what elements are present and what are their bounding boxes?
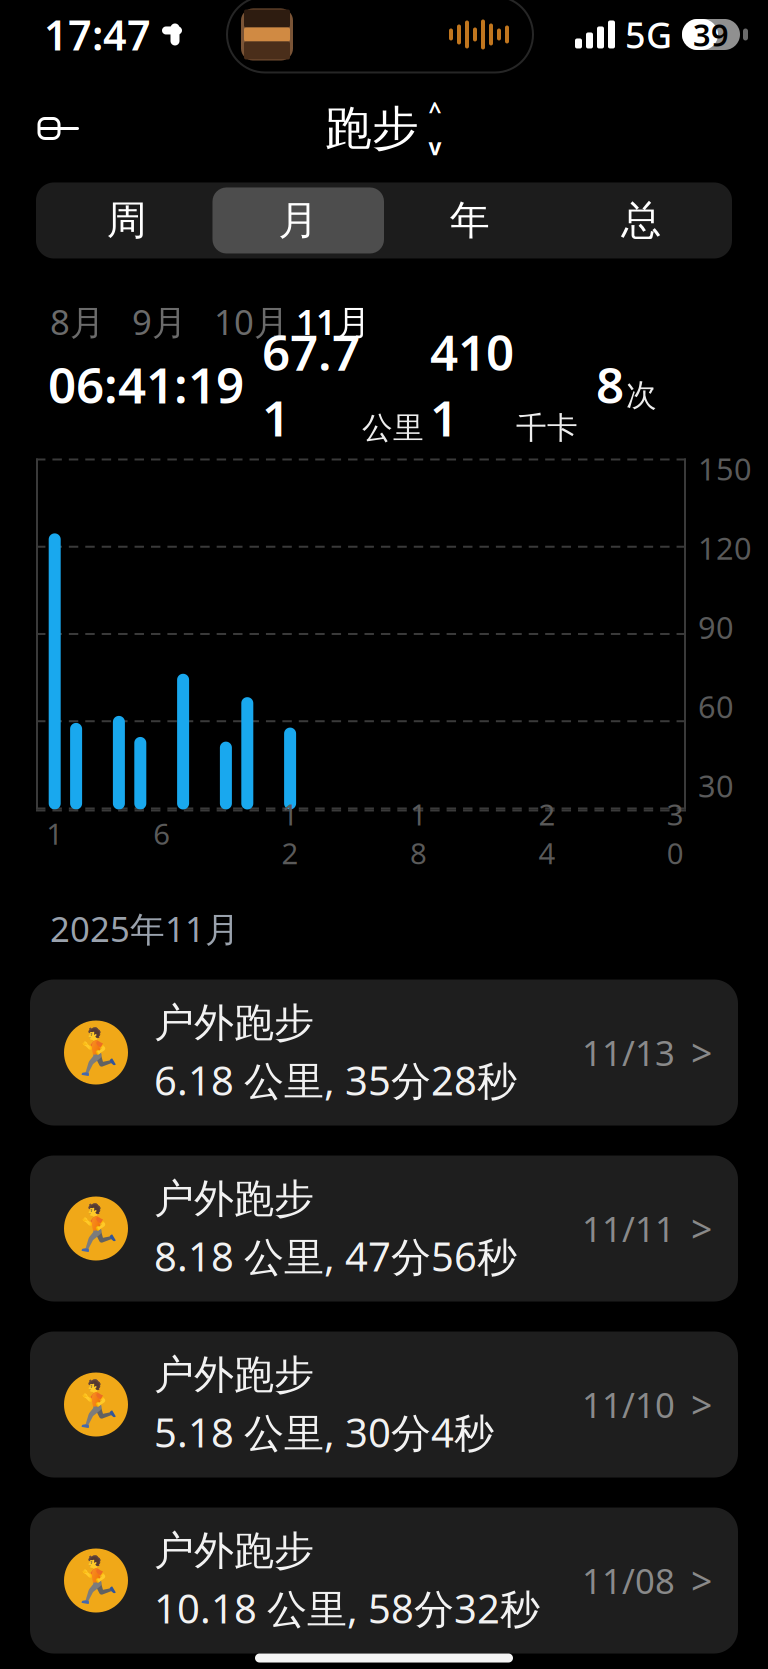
button[interactable]: 8月 [50, 300, 132, 342]
staticText: 11/13 [582, 1029, 675, 1075]
staticText: > [691, 1556, 712, 1605]
staticText: 18 [410, 794, 427, 872]
staticText: 跑步 [325, 100, 419, 157]
button[interactable]: 9月 [132, 300, 214, 342]
button[interactable]: 周 [41, 187, 212, 253]
staticText: 千卡 [516, 409, 578, 447]
staticText: ^ [428, 95, 441, 125]
button[interactable]: 年 [384, 187, 555, 253]
staticText: 1 [46, 814, 63, 853]
staticText: 11/10 [582, 1381, 675, 1427]
staticText: 8.18 公里, 47分56秒 [154, 1229, 517, 1283]
staticText: 30 [698, 765, 734, 806]
staticText: 5G [625, 11, 672, 58]
staticText: 月 [278, 196, 318, 245]
button[interactable]: 🏃 [30, 1331, 738, 1477]
staticText: 12 [282, 794, 299, 872]
staticText: 11/11 [582, 1205, 675, 1251]
staticText: 户外跑步 [154, 1526, 314, 1575]
staticText: 39 [693, 14, 729, 55]
button[interactable]: 10月 [214, 300, 296, 342]
button[interactable]: 🏃 [30, 1507, 738, 1653]
staticText: 11/08 [582, 1557, 675, 1603]
staticText: > [691, 1204, 712, 1253]
staticText: 90 [698, 607, 734, 647]
staticText: 06:41:19 [48, 352, 244, 417]
staticText: 30 [667, 794, 684, 872]
staticText: 8月 [50, 298, 105, 344]
staticText: v [428, 131, 441, 162]
staticText: 年 [450, 196, 490, 245]
staticText: 🏃 [68, 1203, 124, 1254]
staticText: 🏃 [68, 1379, 124, 1430]
button[interactable]: 返回 [22, 91, 96, 165]
staticText: 🏃 [68, 1555, 124, 1606]
staticText: 次 [626, 377, 657, 414]
button[interactable]: 🏃 [30, 979, 738, 1125]
staticText: 周 [107, 196, 147, 245]
staticText: 17:47 [44, 7, 151, 62]
staticText: 4101 [430, 319, 514, 450]
staticText: 5.18 公里, 30分4秒 [154, 1405, 494, 1459]
staticText: 11月 [296, 298, 371, 344]
staticText: 🏃 [68, 1027, 124, 1078]
staticText: 6 [153, 814, 170, 853]
button[interactable]: 跑步 [313, 92, 455, 165]
button[interactable]: 🏃 [30, 1155, 738, 1301]
staticText: 2025年11月 [50, 905, 240, 951]
staticText: 10.18 公里, 58分32秒 [154, 1581, 540, 1635]
staticText: > [691, 1380, 712, 1429]
staticText: 6.18 公里, 35分28秒 [154, 1053, 517, 1107]
staticText: > [691, 1028, 712, 1077]
staticText: 户外跑步 [154, 1174, 314, 1223]
staticText: 10月 [214, 298, 289, 344]
staticText: 户外跑步 [154, 998, 314, 1047]
staticText: 60 [698, 686, 734, 727]
button[interactable]: 月 [212, 187, 384, 253]
staticText: 公里 [362, 409, 424, 447]
staticText: 户外跑步 [154, 1350, 314, 1399]
staticText: 67.71 [262, 319, 360, 450]
staticText: 24 [538, 794, 555, 872]
staticText: 120 [698, 527, 752, 568]
button[interactable]: 11月 [296, 300, 378, 342]
staticText: 8 [596, 352, 624, 417]
staticText: 150 [698, 448, 752, 489]
staticText: 9月 [132, 298, 187, 344]
button[interactable]: 总 [555, 187, 727, 253]
staticText: 总 [621, 196, 661, 245]
